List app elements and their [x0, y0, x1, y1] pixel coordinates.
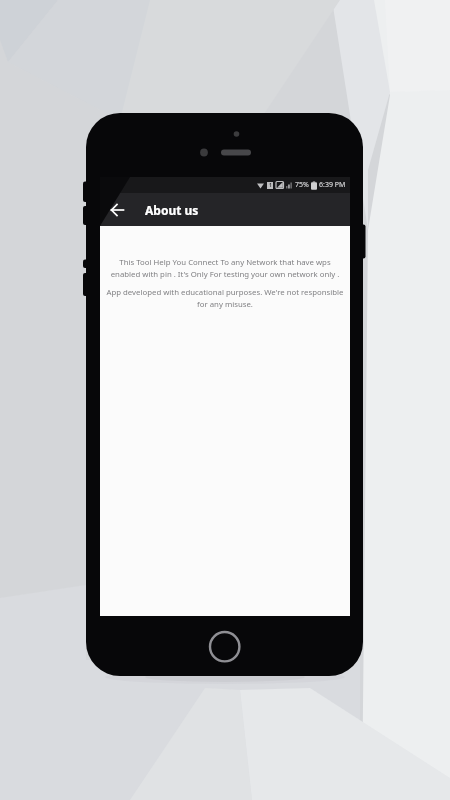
staticText: About us [145, 202, 199, 218]
staticText: 1 [269, 182, 272, 189]
staticText: 75% [295, 180, 309, 190]
staticText: 6:39 PM [319, 180, 346, 190]
staticText: This Tool Help You Connect To any Networ… [100, 257, 350, 279]
staticText: App developed with educational purposes.… [100, 287, 350, 309]
button[interactable] [100, 193, 134, 226]
